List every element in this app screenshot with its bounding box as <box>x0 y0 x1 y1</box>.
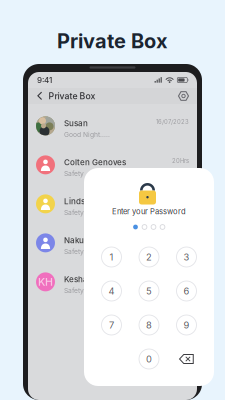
staticText: Safety <box>64 170 84 178</box>
staticText: Lindsey <box>64 196 95 206</box>
staticText: 9 <box>183 319 189 331</box>
staticText: Safety <box>64 287 84 295</box>
staticText: 8 <box>146 319 152 331</box>
button[interactable]: 9 <box>173 312 199 338</box>
button[interactable]: Susan <box>28 106 197 145</box>
button[interactable]: 1 <box>98 244 124 270</box>
button[interactable]: Lindsey <box>28 184 197 223</box>
staticText: Private Box <box>57 29 168 53</box>
staticText: 7 <box>109 319 114 331</box>
staticText: Safety <box>64 248 84 256</box>
staticText: Susan <box>64 118 88 128</box>
staticText: 16/07/2023 <box>156 118 189 125</box>
staticText: 2 <box>146 251 152 263</box>
staticText: 20Hrs <box>172 157 189 164</box>
staticText: Good Night..... <box>64 131 110 139</box>
staticText: Colten Genoves <box>64 157 126 167</box>
staticText: 0 <box>146 353 152 365</box>
staticText: 6 <box>183 285 189 297</box>
staticText: 3 <box>183 251 189 263</box>
button[interactable]: Back <box>35 89 44 102</box>
staticText: 1 <box>109 251 113 263</box>
button[interactable]: 8 <box>136 312 162 338</box>
staticText: KH <box>38 275 53 288</box>
button[interactable]: 2 <box>136 244 162 270</box>
button[interactable]: Nakul <box>28 223 197 262</box>
button[interactable]: Settings <box>178 90 189 101</box>
button[interactable]: Delete <box>173 346 199 372</box>
button[interactable]: KH <box>28 262 197 301</box>
button[interactable]: 0 <box>136 346 162 372</box>
staticText: Keshav <box>64 274 92 284</box>
staticText: Nakul <box>64 235 86 245</box>
staticText: Safety <box>64 209 84 217</box>
button[interactable]: Colten Genoves <box>28 145 197 184</box>
staticText: 4 <box>108 285 114 297</box>
button[interactable]: 3 <box>173 244 199 270</box>
button[interactable]: 5 <box>136 278 162 304</box>
staticText: Enter your Password <box>112 207 186 216</box>
button[interactable]: 6 <box>173 278 199 304</box>
staticText: 9:41 <box>37 75 52 85</box>
button[interactable]: 4 <box>98 278 124 304</box>
staticText: Private Box <box>48 91 95 101</box>
button[interactable]: 7 <box>98 312 124 338</box>
staticText: 5 <box>146 285 152 297</box>
